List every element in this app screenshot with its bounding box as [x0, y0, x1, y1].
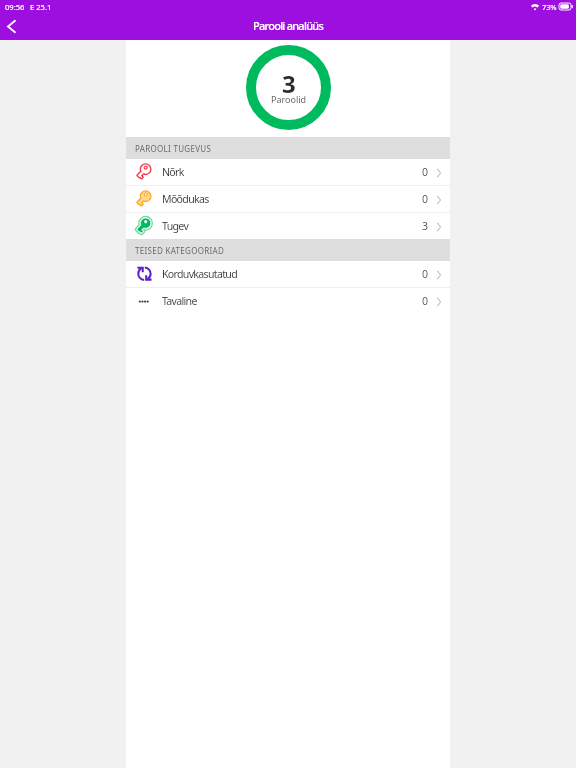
staticText: PAROOLI TUGEVUS [135, 143, 212, 154]
button[interactable]: Tugev [126, 213, 450, 239]
staticText: 3 [422, 219, 429, 233]
staticText: 0 [422, 267, 429, 281]
staticText: Nõrk [162, 165, 184, 179]
button[interactable]: Nõrk [126, 159, 450, 186]
staticText: Paroolid [271, 93, 307, 105]
staticText: 3 [282, 67, 296, 100]
staticText: Tavaline [162, 294, 197, 308]
staticText: Tugev [162, 219, 189, 233]
button[interactable]: Tavaline [126, 288, 450, 314]
staticText: Mõõdukas [162, 192, 209, 206]
staticText: E 25.1 [30, 2, 52, 12]
staticText: TEISED KATEGOORIAD [135, 245, 225, 256]
staticText: 0 [422, 192, 429, 206]
staticText: Parooli analüüs [253, 18, 324, 33]
staticText: 73% [542, 2, 557, 12]
button[interactable]: Korduvkasutatud [126, 261, 450, 288]
button[interactable]: Mõõdukas [126, 186, 450, 213]
staticText: 09:56 [5, 2, 25, 12]
button[interactable]: Back [0, 15, 24, 39]
staticText: 0 [422, 294, 429, 308]
staticText: 0 [422, 165, 429, 179]
staticText: Korduvkasutatud [162, 267, 237, 281]
